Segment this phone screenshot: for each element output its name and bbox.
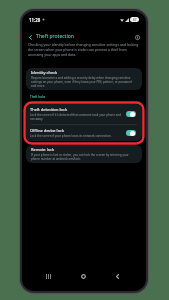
staticText: Theft protection (36, 33, 74, 40)
button[interactable]: Toggle (126, 130, 136, 136)
staticText: Lock the screen if your phone loses its … (30, 134, 112, 138)
button[interactable]: Help (132, 32, 142, 42)
button[interactable]: Toggle (126, 111, 136, 117)
button[interactable]: Remote lock (26, 145, 142, 163)
staticText: Theft locks (30, 95, 46, 99)
button[interactable]: Identity check (26, 68, 142, 90)
staticText: Require biometrics and adding a security… (31, 76, 137, 88)
button[interactable]: Recents (41, 269, 55, 283)
button[interactable]: Theft detection lock (26, 104, 142, 124)
button[interactable]: Back (110, 269, 124, 283)
staticText: Offline device lock (30, 128, 65, 133)
staticText: Remote lock (31, 147, 55, 152)
button[interactable]: Back (25, 32, 35, 42)
staticText: Identity check (31, 70, 58, 75)
button[interactable]: Offline device lock (26, 125, 142, 141)
staticText: Checking your identity before changing s… (28, 42, 140, 57)
staticText: 11:28 (29, 17, 41, 23)
staticText: 67 (133, 18, 137, 22)
staticText: Theft detection lock (30, 107, 68, 112)
staticText: If your phone is lost or stolen, you can… (31, 153, 137, 161)
button[interactable]: Home (76, 269, 90, 283)
staticText: Lock the screen if it's detected that so… (30, 113, 124, 121)
